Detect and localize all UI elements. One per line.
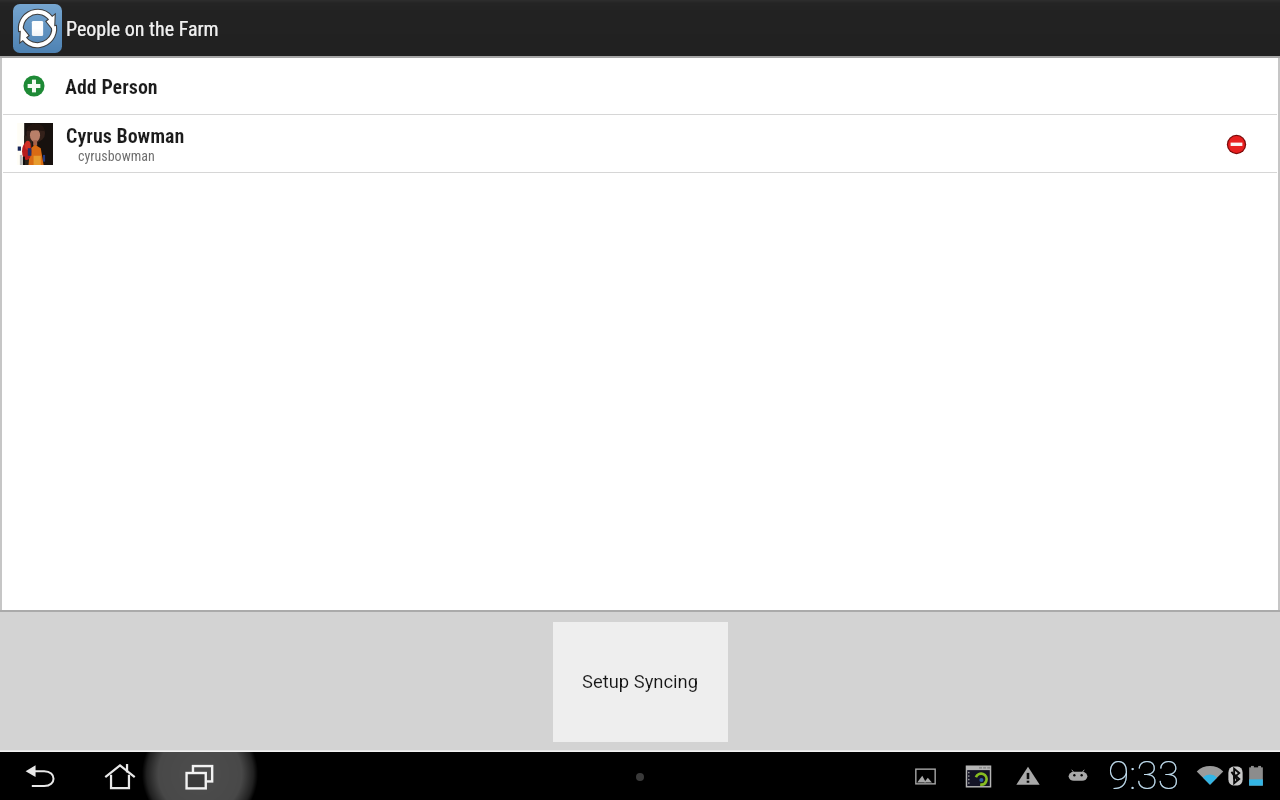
button[interactable]: Home [92,752,148,800]
button[interactable]: Remove person [1214,122,1258,166]
button[interactable]: Cyrus Bowman [3,115,1277,172]
staticText: People on the Farm [66,17,219,40]
button[interactable]: Setup Syncing [553,622,728,742]
button[interactable]: Warning [1004,752,1052,800]
button[interactable]: People on the Farm, app icon [13,4,62,53]
staticText: Add Person [65,75,158,98]
staticText: cyrusbowman [78,148,155,164]
staticText: Setup Syncing [582,671,699,693]
button[interactable]: Back [12,752,68,800]
staticText: Cyrus Bowman [66,124,185,147]
staticText: 9:33 [1108,753,1179,799]
button[interactable]: Add Person [3,58,1277,114]
button[interactable]: Sync notification [954,752,1002,800]
button[interactable]: Recent apps [172,752,228,800]
button[interactable]: Screenshot saved [901,752,949,800]
button[interactable]: Android system [1054,752,1102,800]
